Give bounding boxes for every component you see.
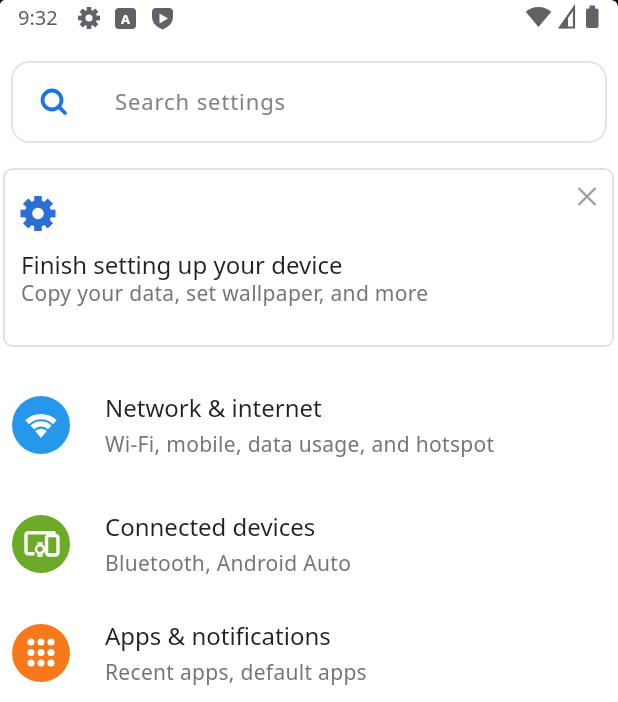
button[interactable] (574, 180, 606, 212)
staticText: 9:32 (18, 4, 58, 31)
staticText: Bluetooth, Android Auto (105, 549, 352, 578)
staticText: Search settings (115, 86, 287, 116)
staticText: Connected devices (105, 510, 316, 543)
staticText: A (121, 10, 130, 28)
button[interactable]: Search settings (11, 61, 607, 143)
staticText: Apps & notifications (105, 619, 331, 652)
staticText: Finish setting up your device (21, 248, 343, 281)
button[interactable]: Network & internet (0, 365, 618, 484)
staticText: Recent apps, default apps (105, 658, 367, 687)
staticText: Network & internet (105, 391, 322, 424)
button[interactable]: Connected devices (0, 484, 618, 603)
staticText: Copy your data, set wallpaper, and more (21, 279, 429, 308)
button[interactable]: Finish setting up your device (3, 168, 614, 347)
button[interactable]: Apps & notifications (0, 603, 618, 702)
staticText: Wi-Fi, mobile, data usage, and hotspot (105, 430, 495, 459)
